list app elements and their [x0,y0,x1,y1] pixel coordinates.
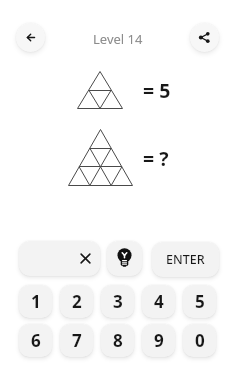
staticText: 3 [113,290,123,313]
button[interactable]: 6 [19,324,52,357]
staticText: 1 [31,290,41,313]
button[interactable]: Clear [19,241,100,276]
button[interactable]: 4 [142,285,175,318]
staticText: 5 [195,290,205,313]
button[interactable]: 8 [101,324,134,357]
button[interactable]: Share [190,23,219,52]
button[interactable]: 5 [183,285,216,318]
button[interactable]: 3 [101,285,134,318]
staticText: 0 [195,329,205,352]
staticText: 8 [113,329,123,352]
button[interactable]: 2 [60,285,93,318]
button[interactable]: ENTER [152,242,219,277]
staticText: 7 [72,329,82,352]
staticText: = 5 [143,77,171,104]
button[interactable]: 7 [60,324,93,357]
staticText: 2 [72,290,82,313]
staticText: 6 [31,329,41,352]
staticText: 4 [154,290,164,313]
staticText: Level 14 [93,30,143,48]
staticText: ENTER [166,251,205,268]
button[interactable]: 9 [142,324,175,357]
staticText: = ? [143,145,169,172]
button[interactable]: 1 [19,285,52,318]
button[interactable]: Hint [107,241,142,276]
button[interactable]: Back [16,23,45,52]
staticText: 9 [154,329,164,352]
button[interactable]: 0 [183,324,216,357]
